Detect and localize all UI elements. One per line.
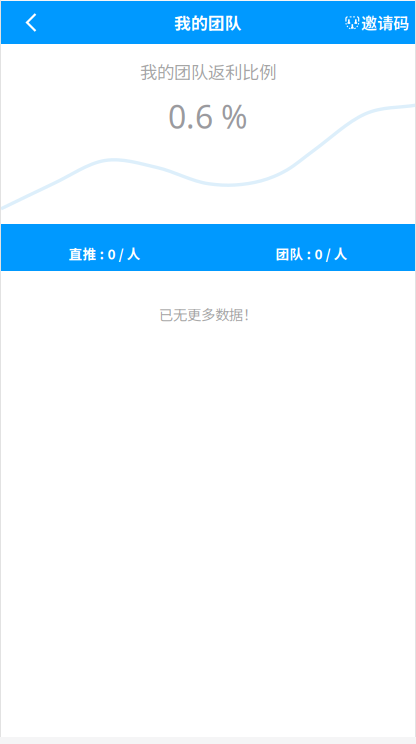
staticText: 0.6 %: [168, 95, 248, 138]
staticText: 已无更多数据！: [159, 304, 257, 324]
button[interactable]: Back: [1, 1, 58, 44]
button[interactable]: 邀请码: [335, 1, 415, 44]
staticText: 我的团队返利比例: [140, 59, 276, 84]
staticText: 团队 : 0 / 人: [275, 244, 347, 263]
staticText: 我的团队: [174, 10, 242, 34]
staticText: 直推 : 0 / 人: [68, 244, 140, 263]
staticText: 邀请码: [361, 11, 409, 34]
